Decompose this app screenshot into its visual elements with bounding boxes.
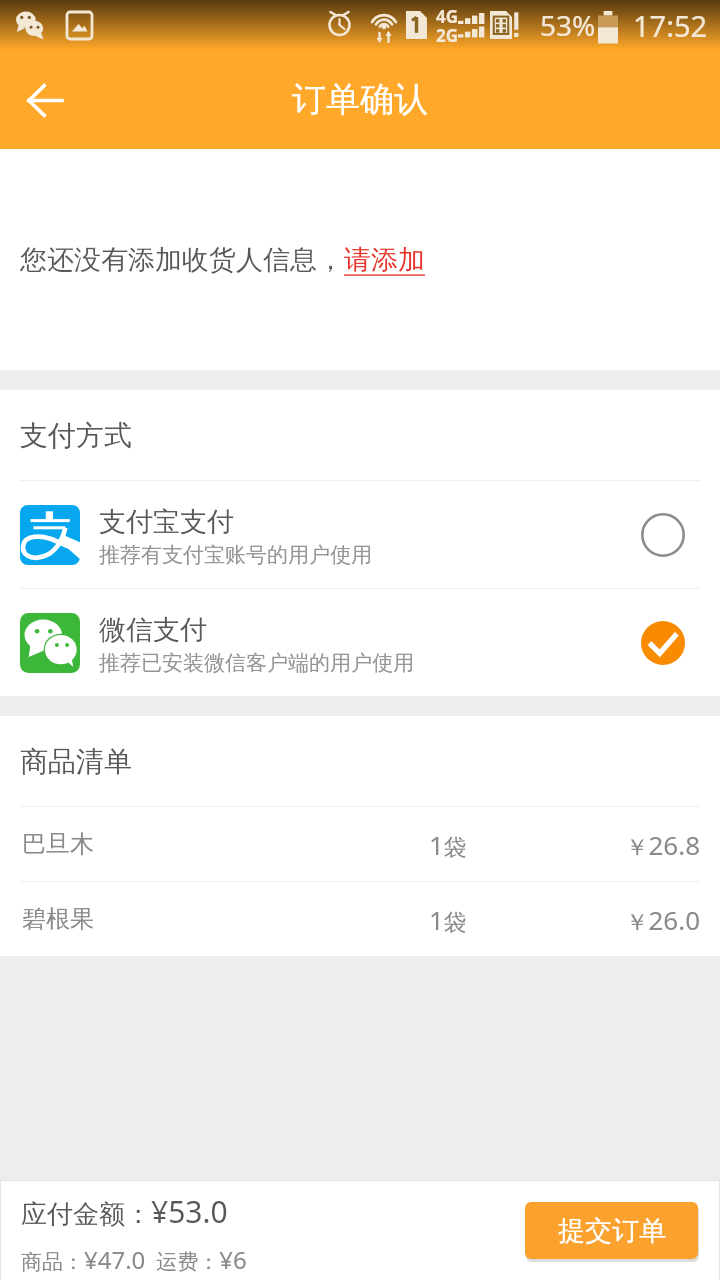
staticText: 53%: [540, 6, 596, 44]
staticText: 碧根果: [22, 904, 94, 934]
staticText: 商品：¥47.0 运费：¥6: [21, 1243, 247, 1276]
staticText: 您还没有添加收货人信息，: [20, 243, 344, 277]
staticText: 微信支付: [99, 613, 207, 647]
staticText: 17:52: [633, 6, 708, 45]
staticText: 商品清单: [20, 744, 132, 779]
button[interactable]: 支付宝支付: [0, 481, 720, 588]
staticText: ￥26.8: [625, 827, 700, 862]
staticText: 提交订单: [558, 1214, 666, 1248]
staticText: 推荐已安装微信客户端的用户使用: [99, 650, 414, 676]
staticText: 4G: [436, 5, 459, 28]
staticText: 订单确认: [292, 78, 428, 121]
staticText: 2G: [436, 24, 459, 47]
button[interactable]: 碧根果: [0, 882, 720, 956]
button[interactable]: 微信支付: [0, 589, 720, 696]
staticText: 推荐有支付宝账号的用户使用: [99, 542, 372, 568]
button[interactable]: Back: [10, 66, 78, 134]
staticText: 请添加: [344, 243, 425, 277]
staticText: ￥26.0: [625, 902, 700, 937]
button[interactable]: 巴旦木: [0, 807, 720, 881]
staticText: 1袋: [429, 827, 467, 862]
staticText: 巴旦木: [22, 829, 94, 859]
button[interactable]: 您还没有添加收货人信息，: [0, 149, 720, 370]
staticText: 支付宝支付: [99, 505, 234, 539]
staticText: 1袋: [429, 902, 467, 937]
staticText: 支付方式: [20, 418, 132, 453]
staticText: 应付金额：¥53.0: [21, 1191, 228, 1232]
button[interactable]: 提交订单: [525, 1202, 698, 1259]
